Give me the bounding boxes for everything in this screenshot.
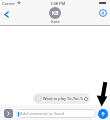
staticText: 1:08 PM: [50, 1, 66, 6]
staticText: Carrier: [2, 1, 16, 6]
button[interactable]: Back: [2, 10, 10, 18]
staticText: Kate: [51, 19, 60, 25]
button[interactable]: Want to play Tic-Tac-Toe: [33, 93, 90, 104]
button[interactable]: Send: [98, 109, 108, 119]
staticText: Add comment or Send: [20, 111, 65, 117]
button[interactable]: Add comment or Send: [16, 109, 96, 118]
button[interactable]: Details: [99, 9, 107, 17]
staticText: KB: [52, 10, 59, 17]
button[interactable]: Apps: [4, 109, 13, 118]
staticText: Want to play Tic-Tac-Toe: [43, 96, 83, 101]
button[interactable]: KB: [49, 7, 61, 25]
